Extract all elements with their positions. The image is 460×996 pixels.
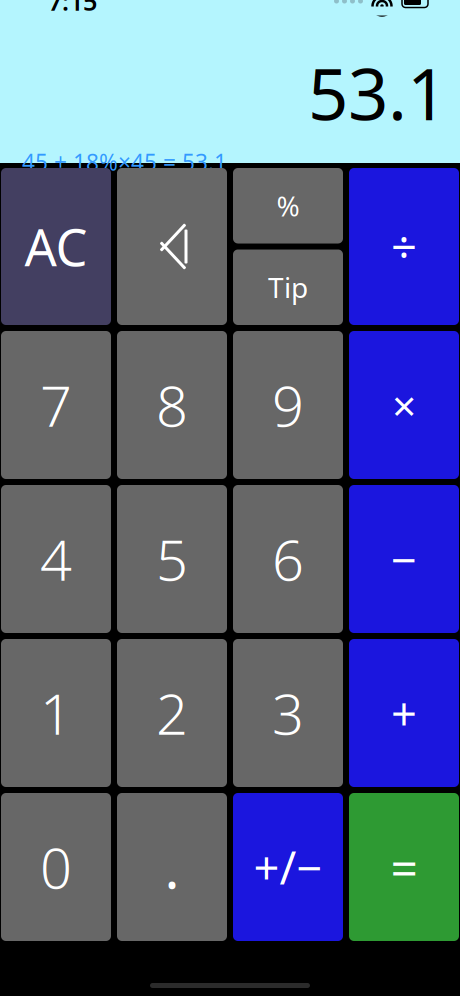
- staticText: +: [391, 683, 417, 743]
- button[interactable]: 8: [117, 331, 227, 479]
- button[interactable]: ×: [349, 331, 459, 479]
- button[interactable]: 2: [117, 639, 227, 787]
- button[interactable]: 7: [1, 331, 111, 479]
- button[interactable]: =: [349, 793, 459, 941]
- button[interactable]: 9: [233, 331, 343, 479]
- button[interactable]: .: [117, 793, 227, 941]
- staticText: 45 + 18%×45 = 53.1: [22, 147, 227, 177]
- staticText: .: [164, 830, 179, 904]
- button[interactable]: 1: [1, 639, 111, 787]
- staticText: 4: [40, 522, 72, 596]
- staticText: 6: [272, 522, 304, 596]
- staticText: +/−: [253, 837, 322, 897]
- button[interactable]: Tip: [233, 249, 343, 325]
- staticText: ÷: [391, 216, 417, 277]
- staticText: %: [276, 187, 299, 224]
- staticText: 2: [156, 676, 188, 750]
- staticText: −: [391, 529, 417, 589]
- staticText: 9: [272, 368, 304, 442]
- staticText: 7: [40, 368, 72, 442]
- button[interactable]: AC: [1, 168, 111, 325]
- button[interactable]: %: [233, 168, 343, 243]
- button[interactable]: 6: [233, 485, 343, 633]
- staticText: 53.1: [308, 46, 447, 140]
- staticText: 5: [156, 522, 188, 596]
- staticText: =: [390, 835, 417, 899]
- staticText: 7:15: [48, 0, 97, 18]
- button[interactable]: 4: [1, 485, 111, 633]
- staticText: Tip: [268, 269, 308, 306]
- staticText: AC: [24, 213, 87, 280]
- button[interactable]: 3: [233, 639, 343, 787]
- staticText: 1: [40, 676, 72, 750]
- staticText: 3: [272, 676, 304, 750]
- button[interactable]: 0: [1, 793, 111, 941]
- button[interactable]: ÷: [349, 168, 459, 325]
- button[interactable]: −: [349, 485, 459, 633]
- button[interactable]: +/−: [233, 793, 343, 941]
- staticText: 0: [40, 830, 72, 904]
- button[interactable]: Backspace: [117, 168, 227, 325]
- button[interactable]: 5: [117, 485, 227, 633]
- staticText: 8: [156, 368, 188, 442]
- staticText: ×: [392, 377, 416, 433]
- button[interactable]: +: [349, 639, 459, 787]
